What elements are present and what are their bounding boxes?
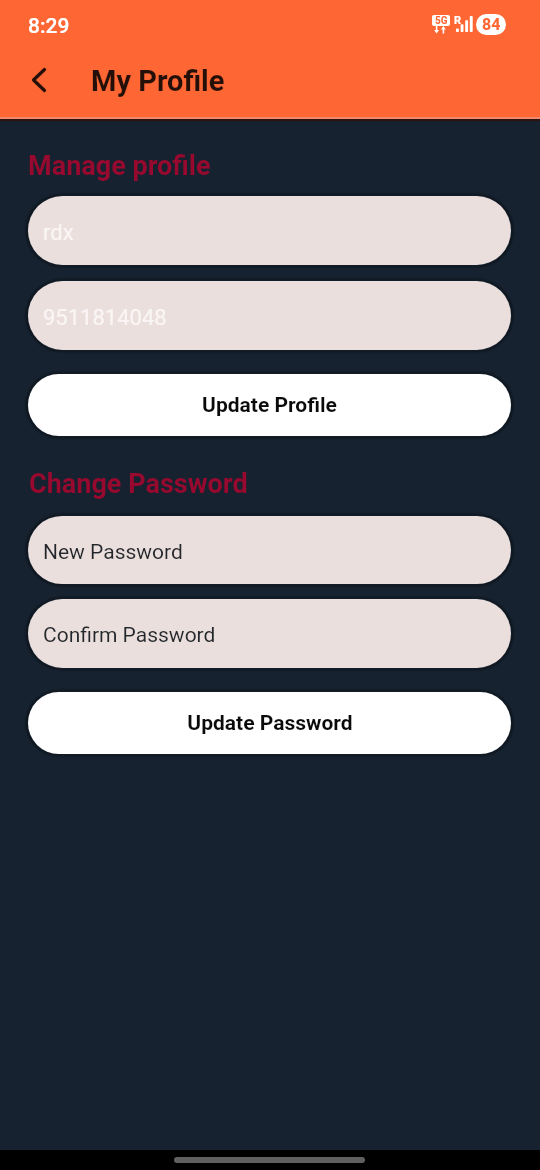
button[interactable]: Confirm Password	[28, 599, 511, 668]
staticText: Update Password	[187, 711, 353, 736]
staticText: rdx	[43, 220, 74, 246]
button[interactable]: New Password	[28, 516, 511, 584]
staticText: R	[454, 14, 462, 27]
staticText: My Profile	[91, 64, 225, 98]
staticText: 9511814048	[43, 305, 167, 331]
button[interactable]: Update Password	[28, 692, 511, 754]
button[interactable]: Back	[15, 57, 61, 103]
staticText: Manage profile	[28, 150, 211, 182]
staticText: Update Profile	[202, 393, 337, 418]
staticText: Confirm Password	[43, 623, 216, 648]
staticText: New Password	[43, 540, 183, 565]
staticText: 5G	[435, 15, 448, 26]
button[interactable]: rdx	[28, 196, 511, 265]
staticText: 8:29	[28, 14, 70, 39]
staticText: Change Password	[29, 468, 248, 500]
button[interactable]: 9511814048	[28, 281, 511, 350]
button[interactable]: Update Profile	[28, 374, 511, 436]
staticText: 84	[482, 15, 501, 34]
